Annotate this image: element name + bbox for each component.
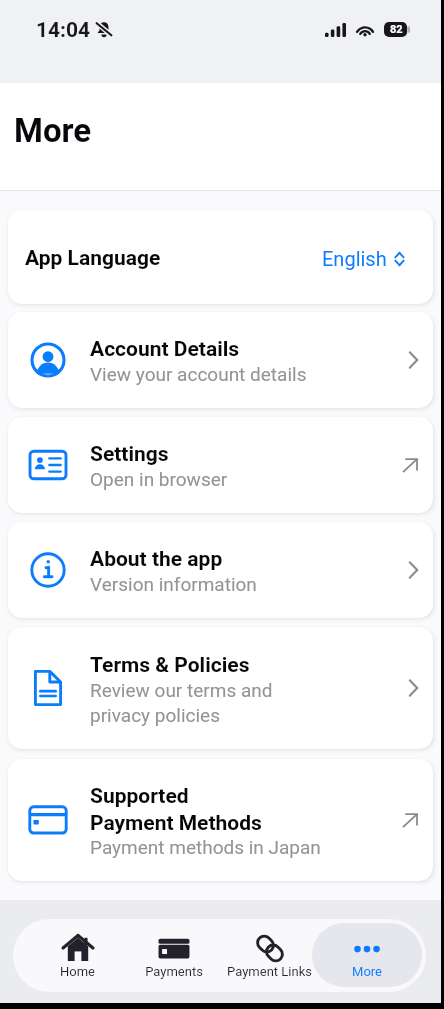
staticText: Payments (145, 964, 203, 979)
button[interactable]: More (312, 923, 422, 987)
button[interactable]: Home (29, 923, 126, 987)
staticText: Settings (90, 442, 169, 467)
staticText: Home (60, 964, 95, 979)
staticText: 14:04 (36, 18, 91, 43)
button[interactable]: Payment Links (221, 923, 318, 987)
staticText: Review our terms and privacy policies (90, 679, 273, 726)
staticText: More (352, 964, 382, 979)
staticText: About the app (90, 547, 223, 572)
staticText: Account Details (90, 337, 240, 362)
button[interactable]: Supported Payment Methods (8, 759, 433, 881)
button[interactable]: App Language (8, 210, 433, 304)
staticText: Open in browser (90, 468, 228, 490)
button[interactable]: Payments (125, 923, 222, 987)
staticText: Version information (90, 573, 257, 595)
staticText: 82 (390, 23, 403, 36)
staticText: Terms & Policies (90, 653, 250, 678)
staticText: View your account details (90, 363, 307, 385)
button[interactable]: About the app (8, 522, 433, 618)
staticText: Payment methods in Japan (90, 836, 321, 858)
staticText: English (322, 247, 387, 270)
staticText: More (14, 111, 92, 150)
button[interactable]: Terms & Policies (8, 627, 433, 749)
staticText: Supported Payment Methods (90, 784, 262, 835)
button[interactable]: Settings (8, 417, 433, 513)
button[interactable]: Account Details (8, 312, 433, 408)
staticText: App Language (25, 246, 161, 271)
staticText: Payment Links (227, 964, 312, 979)
